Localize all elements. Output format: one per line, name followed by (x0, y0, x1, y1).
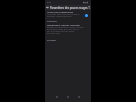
button[interactable]: Back (45, 5, 91, 10)
other: Back (46, 6, 49, 9)
button[interactable]: Toggle (82, 13, 88, 17)
staticText: Permet aux applications tierces d'intég (47, 26, 84, 29)
button[interactable] (45, 23, 91, 34)
button[interactable]: Recent apps (76, 94, 82, 100)
staticText: 9:41 (47, 1, 52, 4)
staticText: du contenu vidéo dans vos flux et (47, 28, 79, 31)
staticText: modifier l'affichage privé. (47, 15, 72, 18)
button[interactable]: Home (65, 94, 71, 100)
button[interactable]: Back (54, 94, 60, 100)
staticText: Intégration Nature YouTube (47, 23, 80, 26)
staticText: Contenu (47, 19, 57, 22)
staticText: Partage (47, 38, 56, 41)
staticText: ● ▲ ▮ (83, 1, 89, 4)
staticText: sur vos pages de profil public (47, 30, 75, 33)
staticText: En savoir plus (47, 32, 60, 35)
staticText: Autoriser cette application web à (47, 13, 80, 16)
staticText: Paramètres des pouces rouges 1 (50, 6, 90, 10)
button[interactable] (45, 10, 91, 18)
staticText: Accès aux Préférences (47, 10, 74, 13)
